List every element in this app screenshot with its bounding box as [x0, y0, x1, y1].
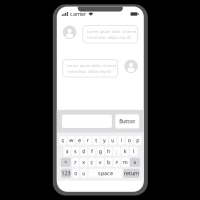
staticText: v [99, 159, 102, 166]
staticText: d [82, 148, 85, 155]
staticText: space [98, 170, 113, 177]
staticText: Lorem ipsum dolor sit amet, [67, 63, 117, 68]
staticText: consectetur adipiscing elit [87, 34, 131, 40]
staticText: u [111, 137, 114, 144]
staticText: u [82, 170, 85, 177]
staticText: Lorem ipsum dolor sit amet, [87, 29, 137, 34]
staticText: h [107, 148, 110, 155]
staticText: c [90, 159, 93, 166]
staticText: o [74, 170, 77, 177]
staticText: consectetur adipiscing elit [67, 68, 111, 74]
staticText: f [91, 148, 93, 155]
staticText: m [123, 159, 128, 166]
staticText: n [115, 159, 118, 166]
staticText: q [61, 137, 64, 144]
staticText: b [107, 159, 110, 166]
staticText: 123 [62, 170, 71, 177]
staticText: w [69, 137, 73, 144]
staticText: x [82, 159, 85, 166]
staticText: e [78, 137, 81, 144]
staticText: ^ [64, 159, 67, 166]
staticText: j [116, 148, 117, 155]
staticText: x [133, 159, 136, 166]
staticText: return [124, 170, 139, 177]
staticText: i [120, 137, 121, 144]
staticText: z [74, 159, 77, 166]
staticText: carrier [70, 10, 86, 18]
staticText: a [66, 148, 69, 155]
staticText: y [103, 137, 106, 144]
staticText: o [128, 137, 131, 144]
staticText: l [133, 148, 134, 155]
staticText: r [87, 137, 89, 144]
staticText: k [124, 148, 127, 155]
staticText: p [136, 137, 139, 144]
staticText: s [74, 148, 77, 155]
staticText: g [99, 148, 102, 155]
staticText: Button [119, 118, 135, 125]
button[interactable]: Button [115, 114, 139, 128]
staticText: t [95, 137, 97, 144]
